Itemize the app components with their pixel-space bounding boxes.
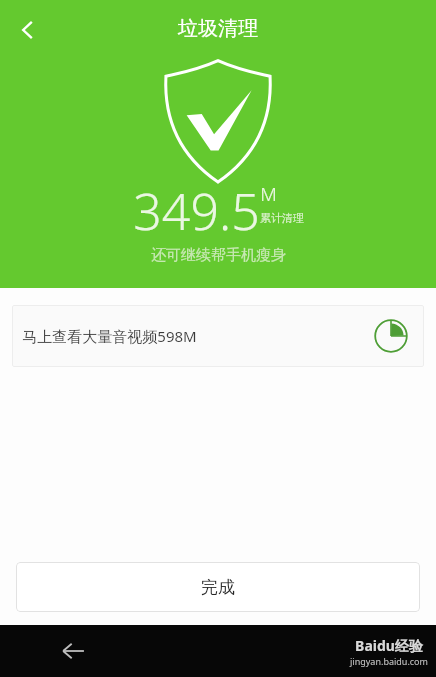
staticText: 349.5 [133,177,260,245]
staticText: 垃圾清理 [178,16,258,41]
staticText: jingyan.baidu.com [350,655,428,667]
button[interactable]: 马上查看大量音视频598M [12,305,424,367]
staticText: 完成 [201,577,235,598]
staticText: 马上查看大量音视频598M [22,326,197,346]
staticText: M [260,181,277,207]
button[interactable]: Back [6,8,50,52]
button[interactable]: Back [60,625,436,677]
staticText: 累计清理 [260,211,304,225]
staticText: Baidu经验 [355,636,423,655]
staticText: 还可继续帮手机瘦身 [151,246,286,265]
button[interactable]: 完成 [16,562,420,612]
